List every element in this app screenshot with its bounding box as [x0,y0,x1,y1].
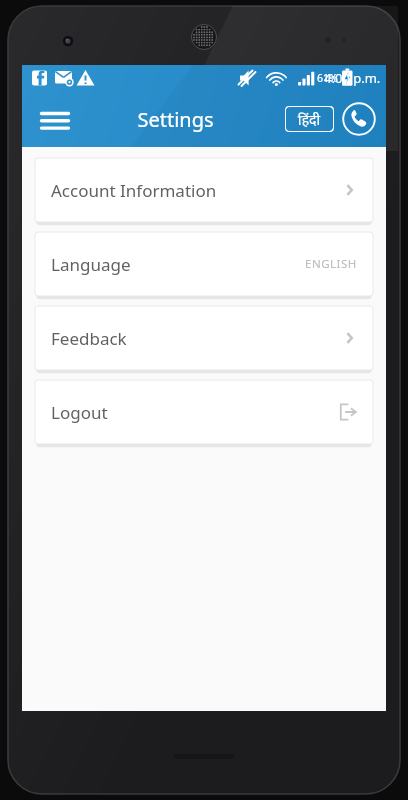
button[interactable]: Feedback [35,306,373,370]
button[interactable]: Open navigation menu [32,96,78,142]
staticText: 4:00 p.m. [324,69,381,87]
button[interactable]: Logout [35,380,373,444]
staticText: हिंदी [298,110,321,129]
staticText: Account Information [51,179,217,202]
staticText: Feedback [51,327,127,350]
staticText: Logout [51,401,108,424]
button[interactable]: Language [35,232,373,296]
staticText: Language [51,253,131,276]
staticText: Settings [137,106,214,133]
button[interactable]: Call support [342,102,376,136]
button[interactable]: Account Information [35,158,373,222]
staticText: 61% [317,71,338,85]
staticText: ENGLISH [305,256,357,272]
button[interactable]: हिंदी [285,106,334,132]
